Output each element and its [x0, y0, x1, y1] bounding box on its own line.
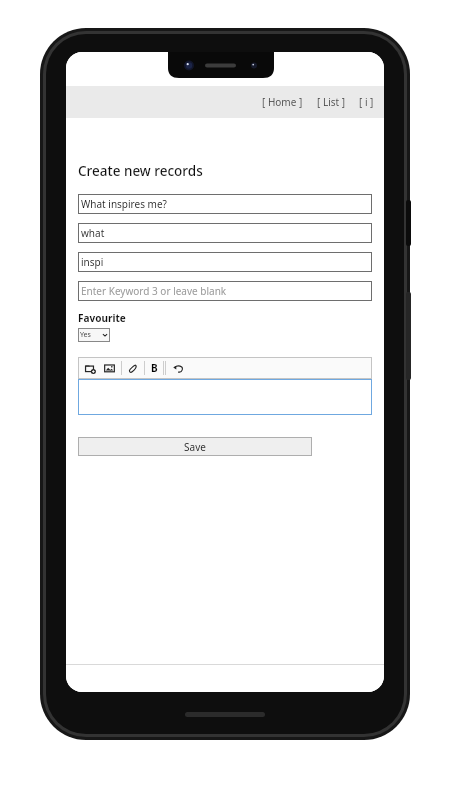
- staticText: B: [151, 361, 158, 375]
- button[interactable]: [ List ]: [315, 90, 347, 114]
- button[interactable]: What inspires me?: [78, 194, 372, 214]
- button[interactable]: [ i ]: [357, 90, 376, 114]
- staticText: [ List ]: [317, 95, 345, 109]
- button[interactable]: Insert file: [82, 360, 98, 376]
- button[interactable]: Undo: [170, 360, 186, 376]
- staticText: Save: [184, 440, 206, 454]
- button[interactable]: [78, 379, 372, 415]
- staticText: Enter Keyword 3 or leave blank: [81, 284, 227, 298]
- button[interactable]: inspi: [78, 252, 372, 272]
- staticText: Create new records: [78, 162, 203, 180]
- staticText: What inspires me?: [81, 197, 167, 211]
- button[interactable]: Bold: [147, 361, 161, 375]
- button[interactable]: Insert link: [125, 360, 141, 376]
- button[interactable]: Insert image: [101, 360, 117, 376]
- button[interactable]: Save: [78, 437, 312, 456]
- staticText: [ Home ]: [262, 95, 303, 109]
- staticText: Yes: [80, 330, 91, 340]
- staticText: Favourite: [78, 311, 126, 325]
- button[interactable]: [ Home ]: [260, 90, 305, 114]
- staticText: [ i ]: [359, 95, 374, 109]
- button[interactable]: what: [78, 223, 372, 243]
- staticText: inspi: [81, 255, 104, 269]
- button[interactable]: Yes: [78, 328, 110, 342]
- staticText: what: [81, 226, 105, 240]
- button[interactable]: Enter Keyword 3 or leave blank: [78, 281, 372, 301]
